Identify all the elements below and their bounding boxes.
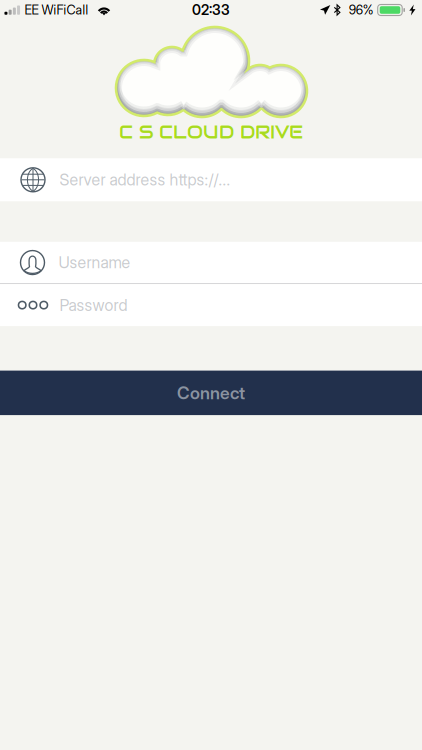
staticText: EE WiFiCall (24, 2, 88, 18)
staticText: Connect (177, 382, 245, 403)
button[interactable]: Server address https://... (0, 158, 422, 201)
staticText: Server address https://... (59, 170, 230, 189)
staticText: Username (58, 253, 130, 272)
staticText: 02:33 (192, 1, 230, 18)
button[interactable]: Password (0, 284, 422, 326)
staticText: C S CLOUD DRIVE (119, 120, 303, 144)
staticText: 96% (349, 2, 374, 18)
staticText: Password (59, 295, 127, 315)
button[interactable]: Connect (0, 371, 422, 415)
button[interactable]: Username (0, 242, 422, 283)
